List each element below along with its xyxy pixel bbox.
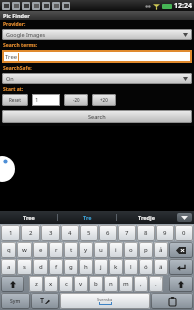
staticText: Google Images	[6, 31, 46, 38]
button[interactable]: Tree	[0, 211, 57, 224]
button[interactable]: 8	[137, 225, 155, 241]
staticText: Tree	[23, 214, 35, 221]
button[interactable]: h	[79, 259, 93, 275]
staticText: Search terms:	[3, 42, 38, 49]
button[interactable]: t	[64, 242, 78, 258]
button[interactable]: Svenska	[60, 293, 150, 309]
staticText: h	[84, 263, 88, 271]
button[interactable]: Shift	[169, 276, 193, 292]
button[interactable]: ä	[154, 259, 168, 275]
button[interactable]: å	[154, 242, 168, 258]
button[interactable]: 5	[80, 225, 98, 241]
button[interactable]: s	[17, 259, 32, 275]
staticText: s	[23, 263, 26, 271]
staticText: ,	[140, 280, 142, 288]
button[interactable]: 2	[21, 225, 40, 241]
button[interactable]: Sym	[1, 293, 30, 309]
button[interactable]: f	[49, 259, 63, 275]
staticText: +20	[100, 97, 108, 103]
staticText: k	[114, 263, 118, 271]
button[interactable]: u	[94, 242, 108, 258]
staticText: 3	[49, 229, 53, 237]
staticText: 1	[35, 96, 39, 104]
staticText: e	[39, 246, 43, 254]
button[interactable]: y	[79, 242, 93, 258]
staticText: On	[6, 75, 14, 82]
button[interactable]: 6	[99, 225, 117, 241]
button[interactable]: d	[33, 259, 48, 275]
button[interactable]: 3	[41, 225, 60, 241]
button[interactable]: r	[49, 242, 63, 258]
staticText: p	[144, 246, 148, 254]
button[interactable]: 1	[1, 225, 20, 241]
staticText: n	[109, 280, 113, 288]
button[interactable]: a	[1, 259, 16, 275]
button[interactable]: e	[33, 242, 48, 258]
button[interactable]: Tree	[2, 50, 192, 63]
button[interactable]: On	[2, 73, 192, 84]
button[interactable]: j	[94, 259, 108, 275]
button[interactable]: .	[149, 276, 163, 292]
button[interactable]: Enter	[169, 259, 193, 275]
staticText: c	[65, 280, 68, 288]
button[interactable]: c	[59, 276, 73, 292]
staticText: 7	[125, 229, 129, 237]
button[interactable]: Backspace	[169, 242, 193, 258]
staticText: ?	[160, 276, 162, 281]
button[interactable]: Tredje	[117, 211, 175, 224]
staticText: w	[22, 246, 27, 254]
button[interactable]: z	[29, 276, 43, 292]
button[interactable]: b	[89, 276, 103, 292]
button[interactable]: 9	[156, 225, 174, 241]
staticText: -20	[73, 97, 80, 103]
staticText: 1	[9, 229, 13, 237]
button[interactable]: 7	[118, 225, 136, 241]
button[interactable]: g	[64, 259, 78, 275]
button[interactable]: Search	[2, 110, 192, 123]
button[interactable]: o	[124, 242, 138, 258]
button[interactable]: x	[44, 276, 58, 292]
button[interactable]: ö	[139, 259, 153, 275]
button[interactable]: v	[74, 276, 88, 292]
staticText: 4	[68, 229, 72, 237]
button[interactable]: k	[109, 259, 123, 275]
staticText: 0	[182, 229, 186, 237]
button[interactable]: Tre	[58, 211, 116, 224]
staticText: r	[55, 246, 58, 254]
button[interactable]: 0	[175, 225, 193, 241]
staticText: Search	[88, 113, 106, 120]
button[interactable]: Clipboard	[151, 293, 193, 309]
staticText: ä	[159, 263, 163, 271]
button[interactable]: l	[124, 259, 138, 275]
staticText: Provider:	[3, 21, 26, 28]
staticText: 12:24	[174, 1, 192, 11]
button[interactable]: More suggestions	[177, 213, 192, 222]
button[interactable]: Shift	[1, 276, 24, 292]
button[interactable]: Reset	[2, 94, 28, 106]
button[interactable]: 1	[32, 94, 60, 106]
button[interactable]: m	[119, 276, 133, 292]
staticText: y	[84, 246, 88, 254]
button[interactable]: p	[139, 242, 153, 258]
staticText: Sym	[10, 298, 21, 305]
staticText: d	[39, 263, 43, 271]
staticText: i	[115, 246, 117, 254]
staticText: ö	[144, 263, 148, 271]
staticText: Tree	[5, 53, 18, 61]
button[interactable]: i	[109, 242, 123, 258]
staticText: q	[7, 246, 11, 254]
button[interactable]: -20	[64, 94, 88, 106]
staticText: u	[99, 246, 103, 254]
staticText: Tre	[83, 214, 92, 221]
button[interactable]: ,	[134, 276, 148, 292]
button[interactable]: n	[104, 276, 118, 292]
staticText: Start at:	[3, 86, 24, 93]
button[interactable]: 4	[61, 225, 79, 241]
button[interactable]: q	[1, 242, 16, 258]
staticText: 2	[29, 229, 33, 237]
button[interactable]: +20	[92, 94, 116, 106]
staticText: m	[123, 280, 129, 288]
button[interactable]: Switch input method	[31, 293, 59, 309]
button[interactable]: Google Images	[2, 29, 192, 40]
button[interactable]: w	[17, 242, 32, 258]
